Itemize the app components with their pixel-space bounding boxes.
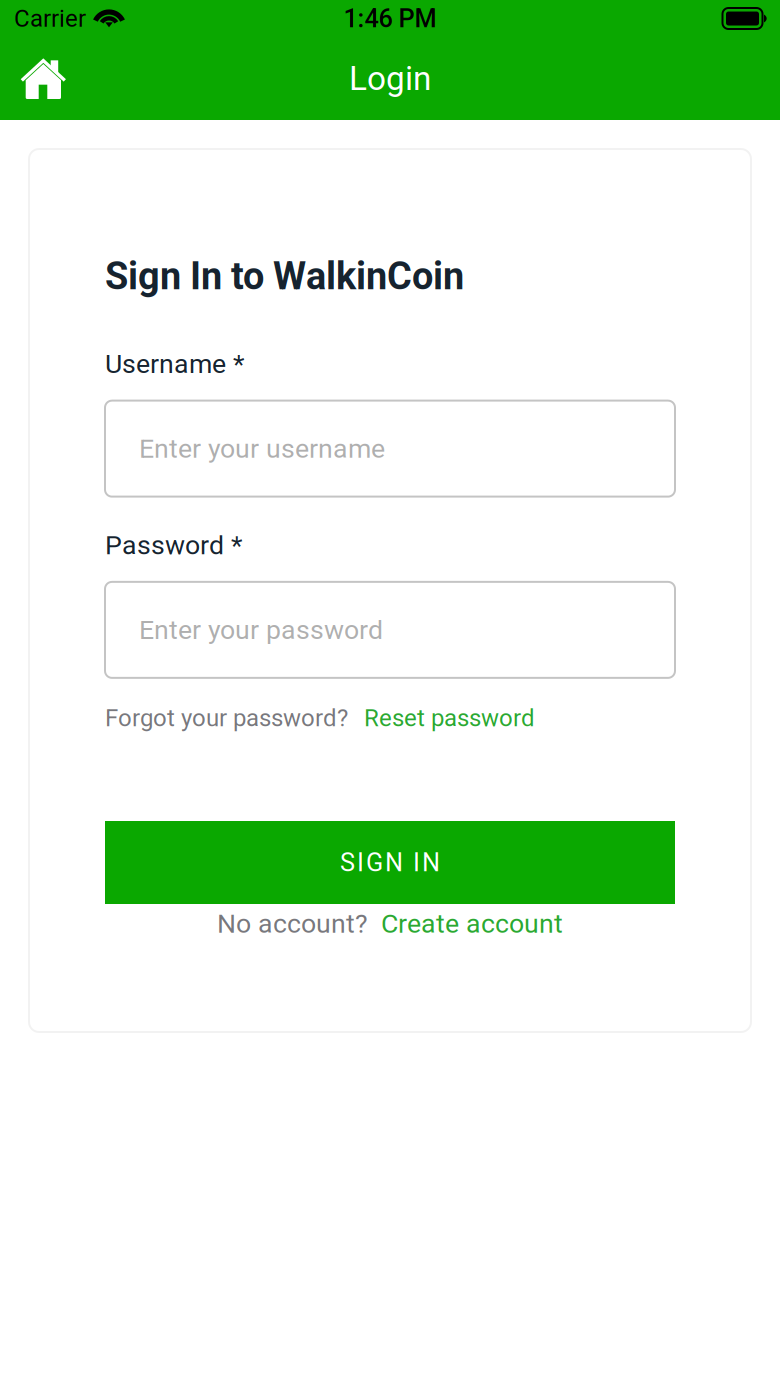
staticText: Username * bbox=[105, 348, 244, 380]
button[interactable]: SIGN IN bbox=[105, 821, 675, 904]
staticText: Login bbox=[349, 59, 431, 98]
staticText: Enter your username bbox=[139, 433, 385, 464]
staticText: Create account bbox=[381, 908, 563, 939]
staticText: 1:46 PM bbox=[343, 4, 436, 33]
staticText: Sign In to WalkinCoin bbox=[105, 254, 464, 298]
staticText: Enter your password bbox=[139, 614, 383, 646]
staticText: No account? bbox=[217, 908, 368, 939]
staticText: Forgot your password? bbox=[105, 704, 348, 732]
staticText: Password * bbox=[105, 530, 242, 561]
staticText: Carrier bbox=[14, 4, 86, 32]
button[interactable]: Home bbox=[0, 37, 84, 120]
staticText: Reset password bbox=[364, 704, 535, 732]
staticText: SIGN IN bbox=[340, 848, 440, 877]
button[interactable]: Reset password bbox=[364, 704, 535, 732]
button[interactable]: Create account bbox=[381, 908, 563, 939]
